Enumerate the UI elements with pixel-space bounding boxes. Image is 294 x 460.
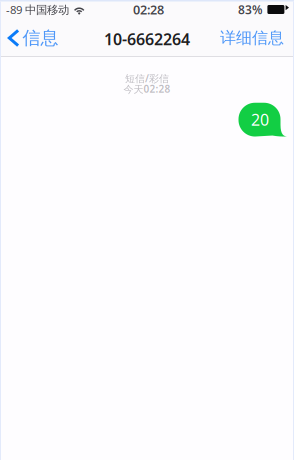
- staticText: 信息: [22, 27, 58, 49]
- staticText: 今天02:28: [123, 82, 170, 96]
- staticText: 10-6662264: [104, 28, 190, 50]
- button[interactable]: 详细信息: [212, 23, 294, 53]
- staticText: 02:28: [133, 1, 164, 18]
- staticText: 短信/彩信: [125, 71, 169, 85]
- staticText: 20: [251, 109, 269, 130]
- button[interactable]: 信息: [0, 22, 66, 54]
- staticText: -89 中国移动: [6, 2, 69, 17]
- staticText: 83%: [238, 1, 263, 18]
- staticText: 详细信息: [220, 28, 284, 48]
